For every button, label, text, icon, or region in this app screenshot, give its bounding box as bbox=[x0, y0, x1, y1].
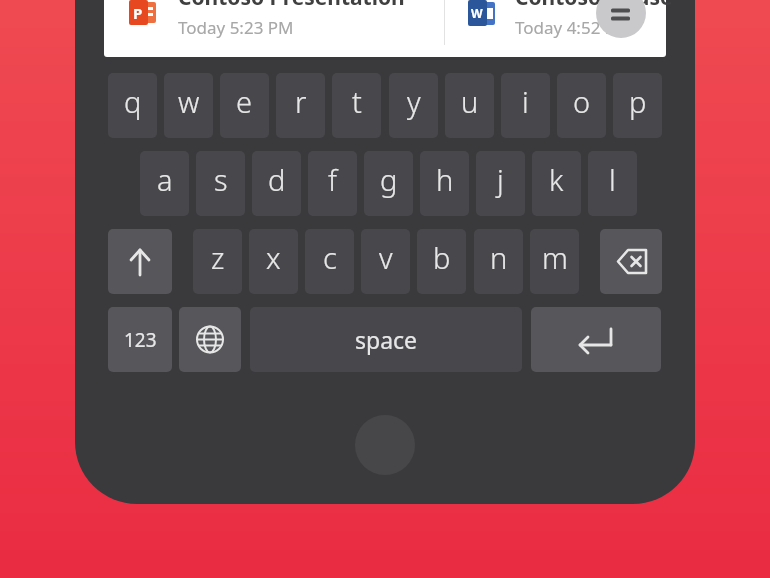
staticText: u bbox=[461, 82, 479, 121]
staticText: m bbox=[542, 238, 568, 277]
staticText: p bbox=[629, 82, 647, 121]
button[interactable]: b bbox=[417, 229, 466, 294]
button[interactable]: e bbox=[220, 73, 269, 138]
button[interactable] bbox=[445, 0, 666, 57]
staticText: t bbox=[352, 82, 362, 121]
button[interactable]: f bbox=[308, 151, 357, 216]
button[interactable]: c bbox=[305, 229, 354, 294]
staticText: l bbox=[609, 160, 616, 199]
button[interactable]: x bbox=[249, 229, 298, 294]
button[interactable]: p bbox=[613, 73, 662, 138]
button[interactable]: space bbox=[250, 307, 522, 372]
button[interactable]: t bbox=[332, 73, 381, 138]
staticText: Contoso House bbox=[515, 0, 673, 12]
staticText: space bbox=[355, 324, 418, 355]
staticText: n bbox=[490, 238, 508, 277]
staticText: i bbox=[522, 82, 529, 121]
staticText: d bbox=[268, 160, 286, 199]
button[interactable]: j bbox=[476, 151, 525, 216]
button[interactable] bbox=[179, 307, 241, 372]
staticText: o bbox=[573, 82, 591, 121]
staticText: r bbox=[295, 82, 307, 121]
button[interactable]: n bbox=[474, 229, 523, 294]
button[interactable]: u bbox=[445, 73, 494, 138]
staticText: c bbox=[323, 238, 337, 277]
staticText: 123 bbox=[124, 327, 157, 353]
staticText: q bbox=[124, 82, 142, 121]
button[interactable]: m bbox=[530, 229, 579, 294]
button[interactable]: r bbox=[276, 73, 325, 138]
staticText: g bbox=[380, 160, 398, 199]
staticText: w bbox=[178, 82, 200, 121]
staticText: Contoso Presentation bbox=[178, 0, 405, 12]
staticText: x bbox=[266, 238, 281, 277]
staticText: j bbox=[497, 160, 504, 199]
staticText: P bbox=[133, 3, 143, 23]
staticText: v bbox=[379, 238, 393, 277]
button[interactable]: a bbox=[140, 151, 189, 216]
button[interactable]: i bbox=[501, 73, 550, 138]
button[interactable]: z bbox=[193, 229, 242, 294]
staticText: z bbox=[211, 238, 225, 277]
button[interactable]: g bbox=[364, 151, 413, 216]
button[interactable]: l bbox=[588, 151, 637, 216]
button[interactable]: s bbox=[196, 151, 245, 216]
button[interactable] bbox=[596, 0, 646, 38]
button[interactable]: h bbox=[420, 151, 469, 216]
staticText: h bbox=[436, 160, 454, 199]
staticText: Today 4:52 PM bbox=[515, 16, 631, 39]
button[interactable] bbox=[108, 229, 172, 294]
staticText: b bbox=[433, 238, 451, 277]
button[interactable]: w bbox=[164, 73, 213, 138]
staticText: Today 5:23 PM bbox=[178, 16, 294, 39]
button[interactable]: o bbox=[557, 73, 606, 138]
button[interactable] bbox=[104, 0, 444, 57]
staticText: f bbox=[328, 160, 337, 199]
button[interactable]: v bbox=[361, 229, 410, 294]
staticText: s bbox=[214, 160, 228, 199]
button[interactable]: 123 bbox=[108, 307, 172, 372]
button[interactable]: q bbox=[108, 73, 157, 138]
staticText: e bbox=[236, 82, 253, 121]
staticText: a bbox=[157, 160, 173, 199]
button[interactable]: y bbox=[389, 73, 438, 138]
button[interactable]: d bbox=[252, 151, 301, 216]
button[interactable] bbox=[531, 307, 661, 372]
button[interactable] bbox=[355, 415, 415, 475]
staticText: k bbox=[549, 160, 564, 199]
staticText: y bbox=[407, 82, 421, 121]
button[interactable] bbox=[600, 229, 662, 294]
button[interactable]: k bbox=[532, 151, 581, 216]
button[interactable]: P bbox=[129, 0, 157, 26]
staticText: W bbox=[471, 5, 483, 21]
button[interactable]: W bbox=[468, 0, 496, 27]
